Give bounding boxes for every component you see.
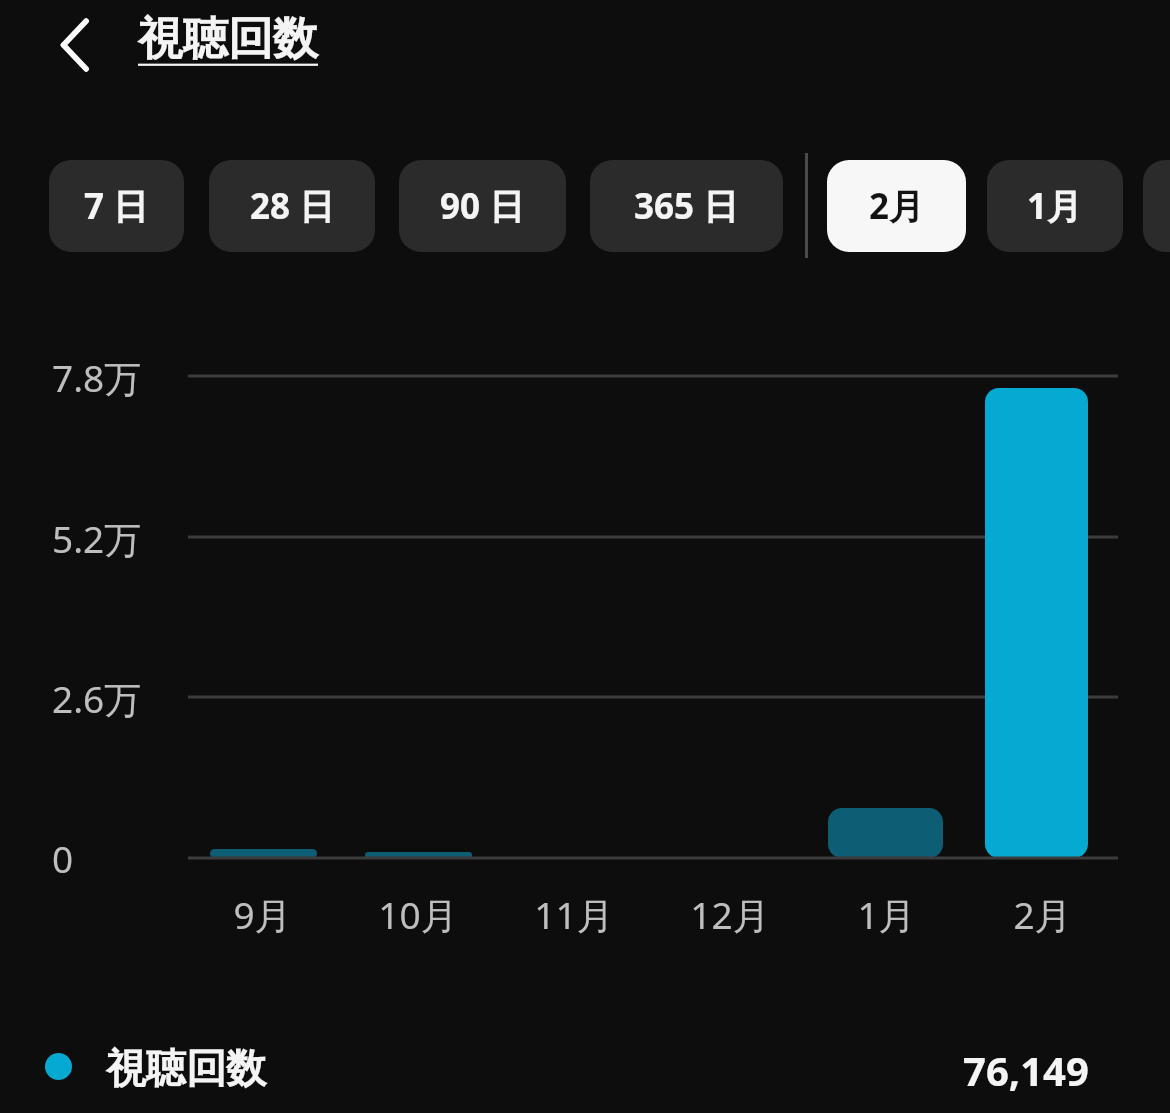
staticText: 11月 — [534, 889, 614, 940]
staticText: 2月 — [1013, 889, 1072, 940]
staticText: 1月 — [857, 889, 916, 940]
staticText: 1月 — [1027, 182, 1083, 230]
button[interactable]: 365 日 — [590, 160, 783, 252]
staticText: 90 日 — [440, 182, 525, 230]
button[interactable]: 28 日 — [209, 160, 375, 252]
button[interactable]: 7 日 — [49, 160, 184, 252]
staticText: 365 日 — [634, 182, 739, 230]
staticText: 5.2万 — [52, 513, 142, 564]
staticText: 2月 — [869, 182, 925, 230]
staticText: 28 日 — [250, 182, 335, 230]
staticText: 7.8万 — [52, 352, 142, 403]
button[interactable]: 90 日 — [399, 160, 566, 252]
staticText: 76,149 — [963, 1043, 1089, 1097]
button[interactable]: Back — [38, 8, 112, 82]
button[interactable]: 2月 — [827, 160, 966, 252]
staticText: 0 — [52, 833, 74, 883]
staticText: 9月 — [233, 889, 292, 940]
staticText: 視聴回数 — [138, 11, 318, 68]
button[interactable]: 視聴回数 — [0, 1030, 1170, 1110]
staticText: 7 日 — [84, 182, 149, 230]
staticText: 10月 — [378, 889, 458, 940]
staticText: 視聴回数 — [106, 1043, 266, 1093]
button[interactable]: 1月 — [987, 160, 1123, 252]
staticText: 12月 — [690, 889, 770, 940]
button[interactable] — [1143, 160, 1170, 252]
staticText: 2.6万 — [52, 673, 142, 724]
